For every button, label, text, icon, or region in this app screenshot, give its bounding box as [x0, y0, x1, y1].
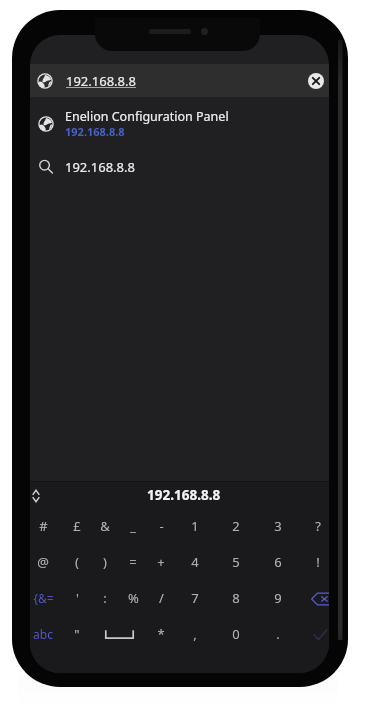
- button[interactable]: ,: [181, 621, 209, 647]
- staticText: £: [73, 517, 81, 535]
- button[interactable]: =: [119, 549, 147, 575]
- button[interactable]: £: [63, 513, 91, 539]
- staticText: *: [157, 625, 165, 643]
- staticText: &: [100, 517, 110, 535]
- staticText: @: [37, 553, 49, 571]
- button[interactable]: 4: [181, 549, 209, 575]
- staticText: 3: [274, 517, 282, 535]
- button[interactable]: {&=: [30, 585, 57, 611]
- staticText: %: [128, 589, 139, 607]
- button[interactable]: &: [91, 513, 119, 539]
- staticText: 6: [274, 553, 282, 571]
- staticText: /: [159, 589, 164, 607]
- button[interactable]: ?: [304, 513, 329, 539]
- button[interactable]: _: [119, 513, 147, 539]
- button[interactable]: 3: [264, 513, 292, 539]
- staticText: 192.168.8.8: [65, 124, 125, 139]
- button[interactable]: abc: [30, 621, 57, 647]
- staticText: ): [103, 553, 107, 571]
- staticText: 5: [232, 553, 240, 571]
- staticText: Enelion Configuration Panel: [65, 108, 229, 125]
- button[interactable]: 2: [222, 513, 250, 539]
- button[interactable]: Space: [97, 621, 141, 647]
- staticText: =: [129, 553, 137, 571]
- button[interactable]: 192.168.8.8: [30, 64, 329, 97]
- staticText: 1: [191, 517, 199, 535]
- button[interactable]: /: [147, 585, 175, 611]
- button[interactable]: 192.168.8.8: [30, 147, 329, 187]
- staticText: ?: [315, 517, 321, 535]
- button[interactable]: *: [147, 621, 175, 647]
- staticText: _: [130, 517, 136, 535]
- button[interactable]: !: [304, 549, 329, 575]
- button[interactable]: 5: [222, 549, 250, 575]
- staticText: ': [76, 589, 79, 607]
- staticText: 9: [274, 589, 282, 607]
- staticText: #: [39, 517, 48, 535]
- staticText: 192.168.8.8: [65, 158, 135, 176]
- button[interactable]: -: [147, 513, 175, 539]
- staticText: .: [276, 625, 280, 643]
- staticText: -: [159, 517, 164, 535]
- staticText: abc: [33, 626, 53, 642]
- button[interactable]: Clear: [308, 73, 324, 89]
- button[interactable]: 1: [181, 513, 209, 539]
- staticText: (: [75, 553, 79, 571]
- button[interactable]: Expand suggestions: [30, 486, 44, 506]
- staticText: :: [103, 589, 107, 607]
- button[interactable]: 6: [264, 549, 292, 575]
- button[interactable]: .: [264, 621, 292, 647]
- button[interactable]: @: [30, 549, 57, 575]
- button[interactable]: ": [63, 621, 91, 647]
- button[interactable]: (: [63, 549, 91, 575]
- staticText: ": [74, 625, 80, 643]
- button[interactable]: #: [30, 513, 57, 539]
- button[interactable]: Enelion Configuration Panel: [30, 100, 329, 147]
- button[interactable]: 0: [222, 621, 250, 647]
- button[interactable]: 8: [222, 585, 250, 611]
- staticText: 2: [232, 517, 240, 535]
- staticText: 7: [191, 589, 199, 607]
- staticText: 8: [232, 589, 240, 607]
- staticText: 0: [232, 625, 240, 643]
- staticText: 4: [191, 553, 199, 571]
- button[interactable]: ): [91, 549, 119, 575]
- button[interactable]: Backspace: [307, 585, 329, 613]
- button[interactable]: 192.168.8.8: [30, 481, 329, 508]
- button[interactable]: 7: [181, 585, 209, 611]
- staticText: 192.168.8.8: [66, 72, 136, 90]
- button[interactable]: 9: [264, 585, 292, 611]
- button[interactable]: ': [63, 585, 91, 611]
- staticText: 192.168.8.8: [147, 486, 221, 504]
- staticText: !: [316, 553, 320, 571]
- staticText: ,: [193, 625, 197, 643]
- button[interactable]: %: [119, 585, 147, 611]
- button[interactable]: :: [91, 585, 119, 611]
- staticText: {&=: [33, 590, 54, 606]
- button[interactable]: +: [147, 549, 175, 575]
- staticText: +: [157, 553, 165, 571]
- button[interactable]: Enter: [306, 621, 329, 649]
